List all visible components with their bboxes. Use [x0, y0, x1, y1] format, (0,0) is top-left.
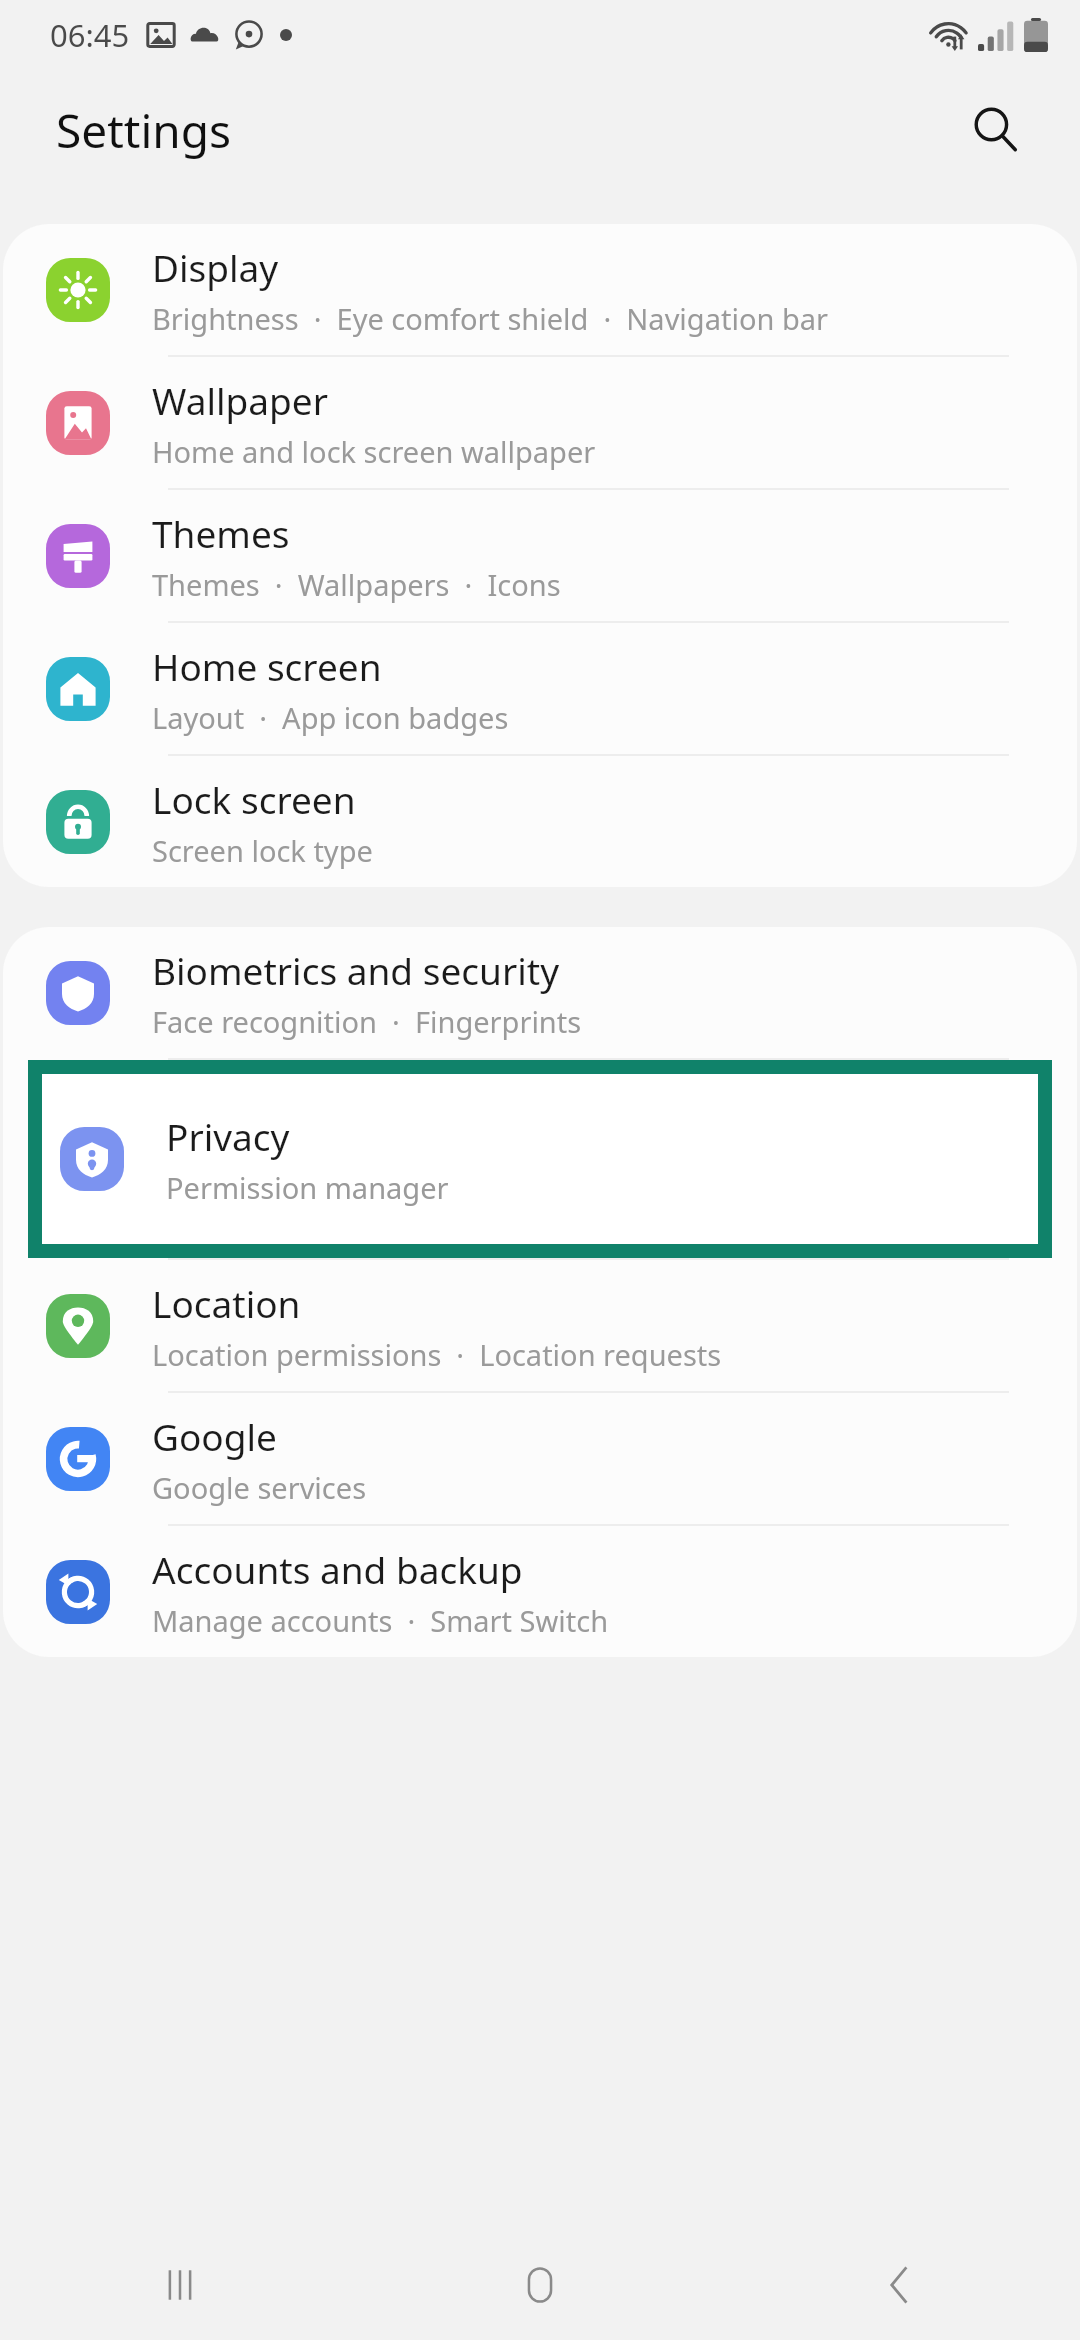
button[interactable]: Display: [3, 224, 1077, 355]
button[interactable]: Location: [3, 1260, 1077, 1391]
staticText: Screen lock type: [152, 831, 373, 870]
button[interactable]: Search: [956, 90, 1036, 170]
button[interactable]: Home: [360, 2230, 720, 2340]
staticText: Location permissions · Location requests: [152, 1335, 722, 1374]
button[interactable]: Biometrics and security: [3, 927, 1077, 1058]
staticText: Settings: [56, 99, 232, 162]
button[interactable]: Google: [3, 1393, 1077, 1524]
button[interactable]: Privacy: [42, 1074, 1038, 1244]
staticText: 06:45: [50, 14, 130, 56]
button[interactable]: Wallpaper: [3, 357, 1077, 488]
staticText: Brightness · Eye comfort shield · Naviga…: [152, 299, 828, 338]
staticText: Display: [152, 242, 279, 292]
button[interactable]: Lock screen: [3, 756, 1077, 887]
staticText: Biometrics and security: [152, 945, 559, 995]
staticText: Google: [152, 1411, 277, 1461]
staticText: Permission manager: [166, 1168, 449, 1207]
button[interactable]: Back: [720, 2230, 1080, 2340]
staticText: Google services: [152, 1468, 367, 1507]
button[interactable]: Accounts and backup: [3, 1526, 1077, 1657]
staticText: Layout · App icon badges: [152, 698, 509, 737]
button[interactable]: Recents: [0, 2230, 360, 2340]
staticText: Accounts and backup: [152, 1544, 523, 1594]
staticText: Face recognition · Fingerprints: [152, 1002, 582, 1041]
staticText: Location: [152, 1278, 301, 1328]
staticText: Home screen: [152, 641, 382, 691]
staticText: Themes · Wallpapers · Icons: [152, 565, 561, 604]
staticText: Manage accounts · Smart Switch: [152, 1601, 609, 1640]
staticText: Lock screen: [152, 774, 356, 824]
button[interactable]: Home screen: [3, 623, 1077, 754]
staticText: Themes: [152, 508, 290, 558]
staticText: Privacy: [166, 1111, 290, 1161]
staticText: Home and lock screen wallpaper: [152, 432, 596, 471]
staticText: Wallpaper: [152, 375, 328, 425]
button[interactable]: Themes: [3, 490, 1077, 621]
